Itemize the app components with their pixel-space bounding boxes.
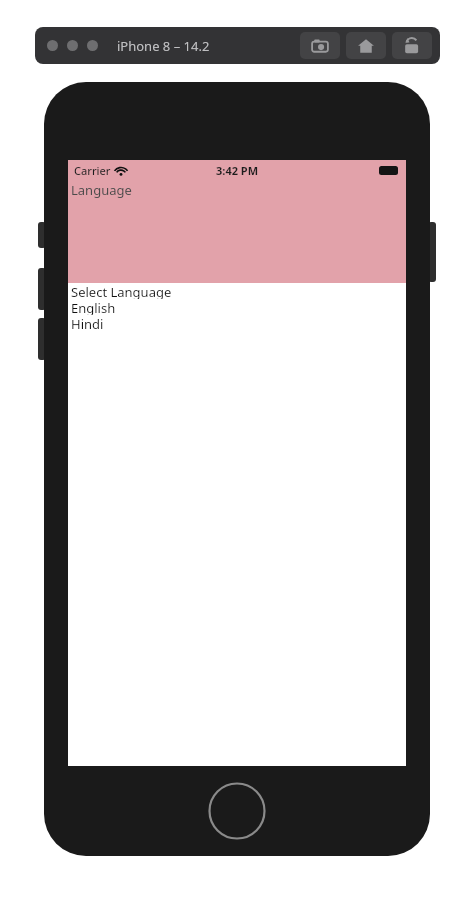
staticText: Carrier	[74, 163, 111, 178]
staticText: 3:42 PM	[216, 163, 259, 178]
button[interactable]	[67, 40, 78, 51]
button[interactable]	[87, 40, 98, 51]
button[interactable]: Home	[346, 32, 386, 59]
button[interactable]: Home button	[208, 782, 266, 840]
button[interactable]: Select Language	[68, 283, 406, 299]
staticText: iPhone 8 – 14.2	[117, 37, 210, 55]
staticText: English	[71, 299, 116, 315]
button[interactable]: Screenshot	[300, 32, 340, 59]
button[interactable]: Rotate	[392, 32, 432, 59]
staticText: Language	[71, 181, 132, 199]
button[interactable]	[47, 40, 58, 51]
button[interactable]: English	[68, 299, 406, 315]
staticText: Select Language	[71, 283, 172, 299]
button[interactable]: Hindi	[68, 315, 406, 331]
staticText: Hindi	[71, 315, 104, 331]
